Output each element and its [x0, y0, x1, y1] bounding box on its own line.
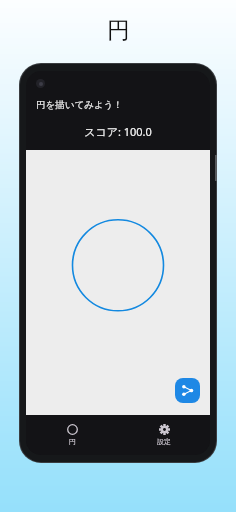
- button[interactable]: 設定: [118, 415, 210, 455]
- staticText: 円を描いてみよう！: [36, 99, 123, 111]
- staticText: スコア: 100.0: [84, 124, 152, 139]
- staticText: 設定: [157, 437, 171, 446]
- button[interactable]: 円: [26, 415, 118, 455]
- button[interactable]: Share: [175, 378, 200, 403]
- staticText: 円: [69, 437, 76, 446]
- staticText: 円: [107, 16, 130, 45]
